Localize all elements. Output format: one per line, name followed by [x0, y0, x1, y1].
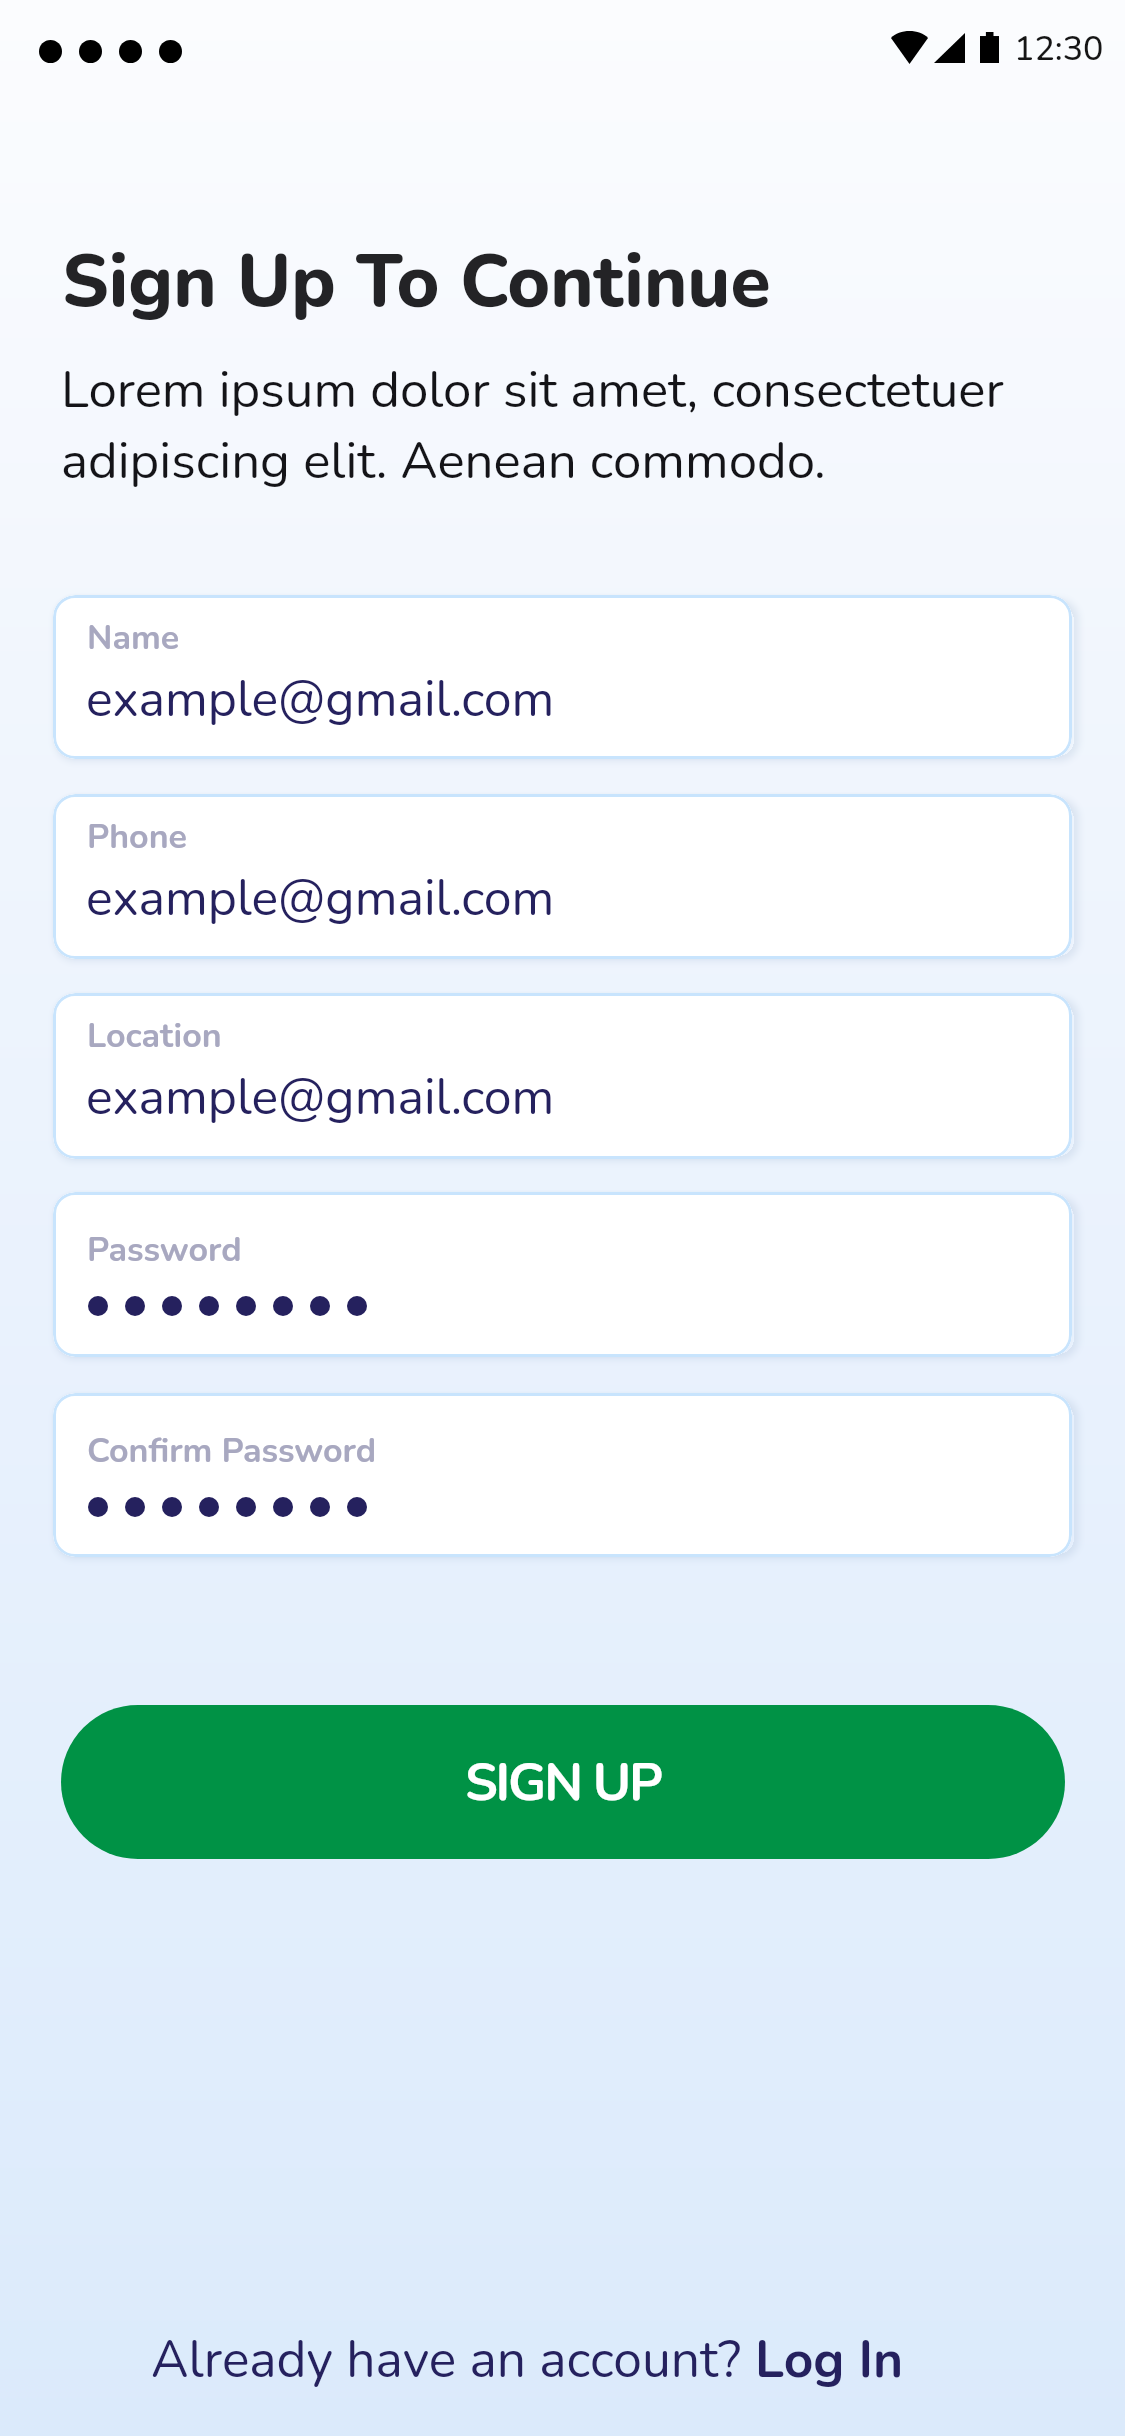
button[interactable]: SIGN UP [61, 1705, 1065, 1859]
button[interactable]: Phone [53, 794, 1072, 959]
staticText: Location [87, 1013, 222, 1059]
staticText: example@gmail.com [86, 665, 555, 733]
other: Wi-Fi [891, 35, 928, 64]
other: Battery [980, 32, 999, 63]
staticText: Phone [87, 814, 187, 860]
staticText: Sign Up To Continue [62, 232, 771, 332]
staticText: Log In [755, 2325, 904, 2395]
staticText: Already have an account? [151, 2325, 755, 2395]
staticText: example@gmail.com [86, 1063, 555, 1131]
staticText: Confirm Password [87, 1428, 377, 1474]
button[interactable]: Log In [755, 2325, 904, 2395]
button[interactable]: Confirm Password [53, 1393, 1072, 1557]
other: Signal [934, 33, 965, 63]
staticText: SIGN UP [465, 1747, 661, 1818]
staticText: 12:30 [1014, 26, 1104, 72]
staticText: Name [87, 615, 180, 661]
staticText: Password [87, 1227, 242, 1273]
button[interactable]: Name [53, 595, 1072, 759]
button[interactable]: Location [53, 993, 1072, 1159]
button[interactable]: Password [53, 1192, 1072, 1357]
staticText: example@gmail.com [86, 864, 555, 932]
staticText: Lorem ipsum dolor sit amet, consectetuer… [61, 355, 1004, 496]
